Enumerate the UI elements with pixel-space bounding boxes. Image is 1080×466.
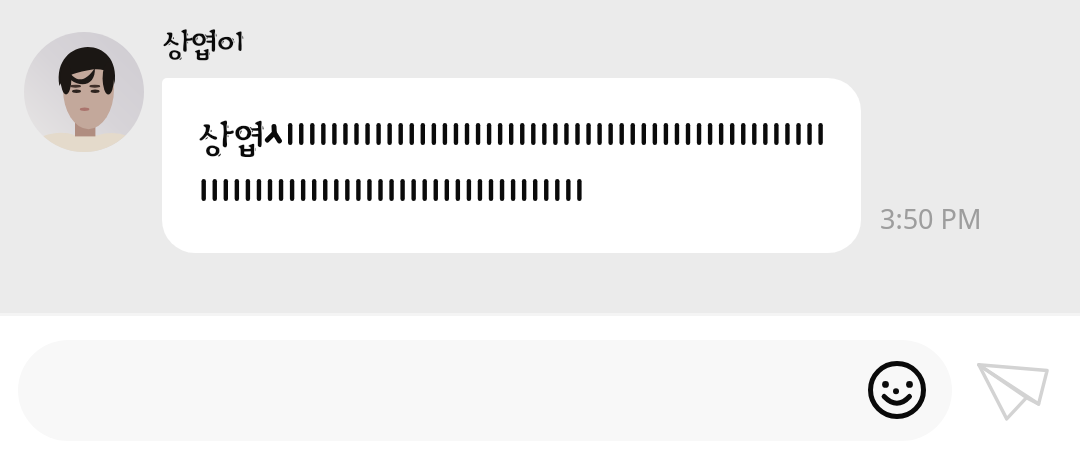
button[interactable]: Send: [968, 355, 1056, 443]
staticText: 상엽: [199, 118, 266, 160]
button[interactable]: Emoji: [862, 355, 932, 425]
button[interactable]: Profile photo: [24, 32, 144, 152]
button[interactable]: 상엽: [162, 78, 861, 253]
staticText: 상엽이: [163, 27, 244, 63]
button[interactable]: [18, 340, 952, 441]
staticText: 3:50 PM: [880, 200, 982, 237]
